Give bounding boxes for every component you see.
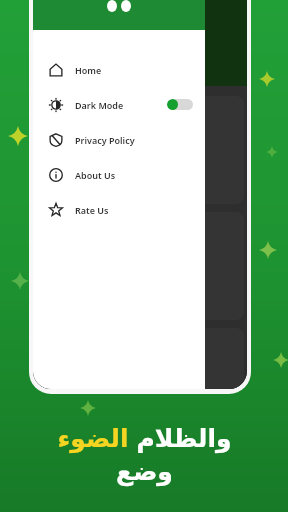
button[interactable]: Home (33, 52, 205, 87)
other: Home (49, 63, 63, 77)
button[interactable]: Toggle dark mode (167, 99, 193, 110)
staticText: الضوء (57, 424, 129, 453)
staticText: Dark Mode (75, 99, 124, 111)
other: About us (49, 168, 63, 182)
staticText: Home (75, 64, 102, 76)
staticText: 36+ (73, 173, 84, 181)
other: Rate us (49, 203, 63, 217)
staticText: About Us (75, 169, 116, 181)
other: Privacy policy (49, 133, 63, 147)
button[interactable]: Privacy policy (33, 122, 205, 157)
staticText: Rate Us (75, 204, 109, 216)
staticText: والظلام (136, 424, 232, 453)
other: Dark mode (49, 98, 63, 112)
button[interactable]: Rate us (33, 192, 205, 227)
staticText: Privacy Policy (75, 134, 135, 146)
button[interactable]: About us (33, 157, 205, 192)
button[interactable]: Dark mode (33, 87, 205, 122)
staticText: وضع (116, 457, 173, 486)
